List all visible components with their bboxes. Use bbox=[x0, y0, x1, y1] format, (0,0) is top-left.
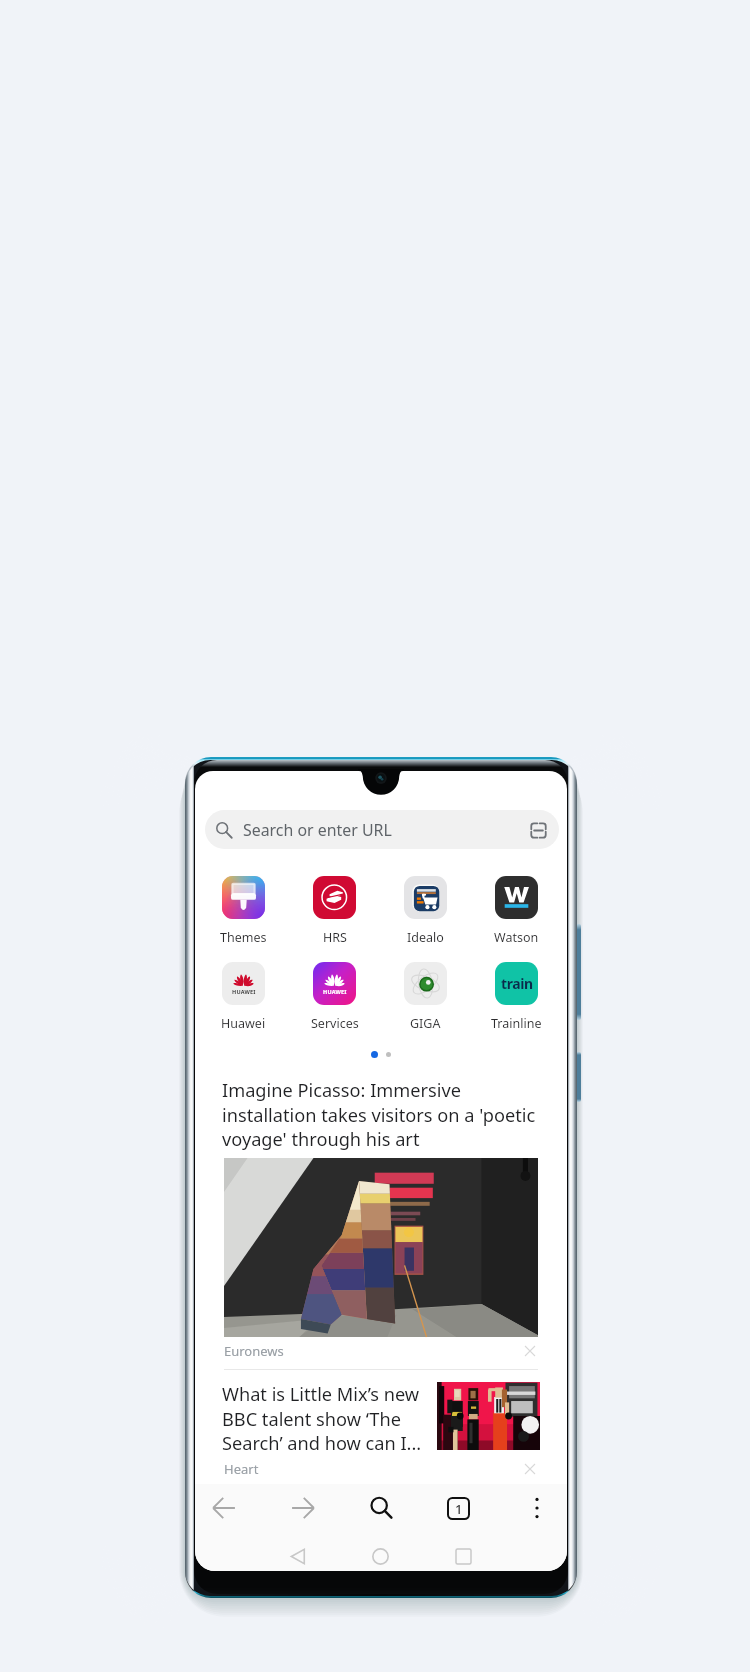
staticText: Euronews bbox=[224, 1342, 284, 1360]
button[interactable]: Home bbox=[352, 1532, 408, 1571]
button[interactable]: Tabs bbox=[432, 1484, 484, 1532]
button[interactable]: Dismiss bbox=[522, 1461, 538, 1477]
button[interactable]: Idealo bbox=[380, 876, 471, 952]
staticText: HUAWEI bbox=[323, 988, 347, 995]
button[interactable]: GIGA bbox=[380, 962, 471, 1038]
button[interactable]: Search or enter URL bbox=[205, 810, 559, 849]
staticText: Heart bbox=[224, 1460, 259, 1478]
button[interactable]: Forward bbox=[277, 1484, 329, 1532]
button[interactable]: Back bbox=[270, 1532, 326, 1571]
button[interactable]: Search bbox=[355, 1484, 407, 1532]
button[interactable]: Scan bbox=[528, 820, 548, 840]
button[interactable]: What is Little Mix’s new BBC talent show… bbox=[195, 1376, 567, 1449]
staticText: GIGA bbox=[410, 1015, 441, 1032]
staticText: What is Little Mix’s new BBC talent show… bbox=[222, 1382, 429, 1455]
staticText: train bbox=[501, 974, 533, 993]
staticText: 1 bbox=[455, 1500, 463, 1518]
button[interactable]: Watson bbox=[471, 876, 562, 952]
staticText: Services bbox=[311, 1015, 359, 1032]
staticText: Idealo bbox=[407, 929, 444, 946]
staticText: Watson bbox=[494, 929, 539, 946]
button[interactable]: HUAWEI bbox=[198, 962, 289, 1038]
staticText: Themes bbox=[220, 929, 267, 946]
button[interactable]: Themes bbox=[198, 876, 289, 952]
staticText: Trainline bbox=[491, 1015, 542, 1032]
staticText: Search or enter URL bbox=[243, 819, 392, 841]
button[interactable]: Dismiss bbox=[522, 1343, 538, 1359]
button[interactable]: Back bbox=[198, 1484, 250, 1532]
staticText: Huawei bbox=[221, 1015, 266, 1032]
button[interactable]: train bbox=[471, 962, 562, 1038]
button[interactable]: HRS bbox=[289, 876, 380, 952]
button[interactable]: More options bbox=[511, 1484, 563, 1532]
button[interactable]: HUAWEI bbox=[289, 962, 380, 1038]
button[interactable] bbox=[224, 1158, 538, 1337]
button[interactable]: Recents bbox=[435, 1532, 491, 1571]
staticText: HRS bbox=[323, 929, 347, 946]
staticText: Imagine Picasso: Immersive installation … bbox=[222, 1078, 542, 1151]
staticText: HUAWEI bbox=[232, 988, 256, 995]
